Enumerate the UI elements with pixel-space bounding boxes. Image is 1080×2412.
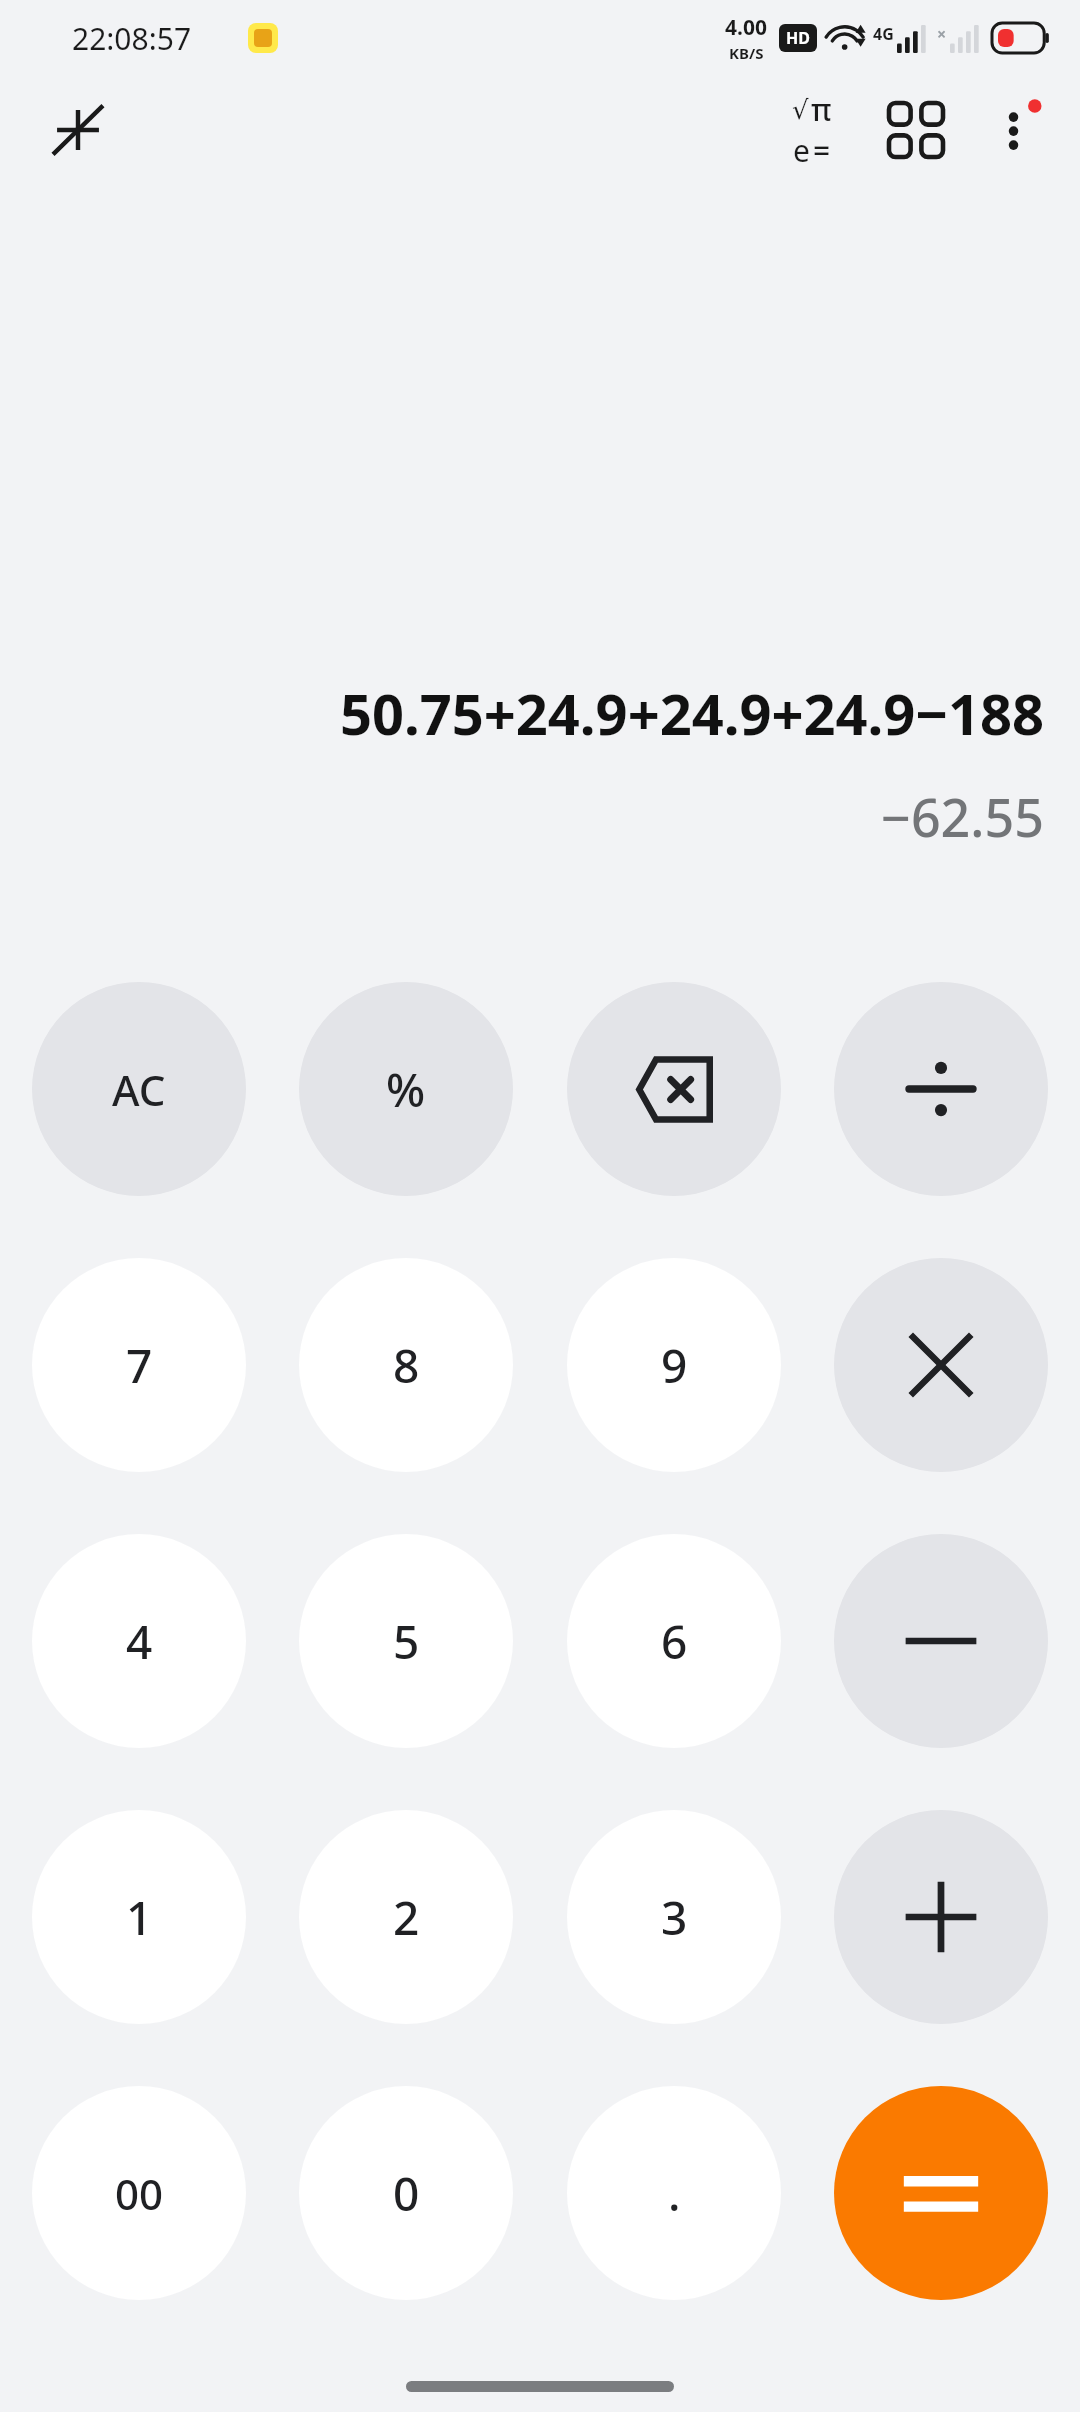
button[interactable]: Equals	[834, 2086, 1048, 2300]
staticText: 2	[393, 1886, 420, 1949]
button[interactable]: 3	[567, 1810, 781, 2024]
button[interactable]: Unit converter	[866, 80, 966, 180]
staticText: −62.55	[880, 781, 1044, 852]
button[interactable]: AC	[32, 982, 246, 1196]
button[interactable]: 6	[567, 1534, 781, 1748]
staticText: AC	[112, 1061, 166, 1118]
staticText: KB/S	[729, 43, 764, 63]
staticText: 50.75+24.9+24.9+24.9−188	[339, 675, 1044, 751]
staticText: 22:08:57	[72, 18, 192, 59]
staticText: 8	[393, 1334, 420, 1397]
button[interactable]: 7	[32, 1258, 246, 1472]
button[interactable]: Divide	[834, 982, 1048, 1196]
button[interactable]: Scientific mode	[762, 80, 862, 180]
staticText: =	[813, 130, 831, 171]
staticText: %	[386, 1058, 426, 1121]
staticText: √	[792, 95, 809, 125]
staticText: 5	[393, 1610, 420, 1673]
button[interactable]: More options	[970, 82, 1066, 178]
staticText: 4G	[873, 23, 894, 45]
staticText: e	[793, 130, 810, 171]
staticText: 4.00	[725, 13, 767, 42]
staticText: 3	[661, 1886, 688, 1949]
staticText: 4	[126, 1610, 153, 1673]
button[interactable]: 8	[299, 1258, 513, 1472]
staticText: π	[811, 89, 832, 130]
button[interactable]: 4	[32, 1534, 246, 1748]
button[interactable]: 5	[299, 1534, 513, 1748]
button[interactable]: 2	[299, 1810, 513, 2024]
button[interactable]: Subtract	[834, 1534, 1048, 1748]
staticText: 0	[393, 2162, 420, 2225]
button[interactable]: 00	[32, 2086, 246, 2300]
button[interactable]: Add	[834, 1810, 1048, 2024]
button[interactable]: %	[299, 982, 513, 1196]
staticText: .	[668, 2162, 681, 2225]
staticText: HD	[786, 27, 810, 49]
staticText: ×	[937, 23, 947, 45]
button[interactable]: .	[567, 2086, 781, 2300]
button[interactable]: 1	[32, 1810, 246, 2024]
staticText: 00	[115, 2165, 164, 2222]
staticText: 9	[661, 1334, 688, 1397]
staticText: 1	[126, 1886, 153, 1949]
button[interactable]: 9	[567, 1258, 781, 1472]
staticText: 6	[661, 1610, 688, 1673]
button[interactable]: Collapse	[30, 82, 126, 178]
button[interactable]: Multiply	[834, 1258, 1048, 1472]
button[interactable]: Backspace	[567, 982, 781, 1196]
staticText: 7	[126, 1334, 153, 1397]
button[interactable]: 0	[299, 2086, 513, 2300]
